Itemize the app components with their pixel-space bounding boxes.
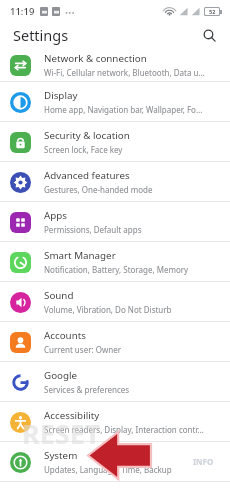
staticText: Network & connection	[44, 52, 147, 65]
staticText: System	[44, 449, 78, 462]
staticText: Gestures, One-handed mode	[44, 184, 153, 195]
staticText: Apps	[44, 209, 68, 222]
staticText: Wi-Fi, Cellular network, Bluetooth, Data…	[44, 67, 205, 78]
staticText: Google	[44, 369, 78, 382]
button[interactable]: System	[0, 442, 230, 482]
button[interactable]: Google	[0, 362, 230, 402]
button[interactable]: Accounts	[0, 322, 230, 362]
staticText: Accessibility	[44, 409, 100, 422]
staticText: Screen readers, Display, Interaction con…	[44, 424, 204, 435]
button[interactable]: Apps	[0, 202, 230, 242]
staticText: Screen lock, Face key	[44, 144, 123, 155]
staticText: 52	[209, 8, 216, 15]
button[interactable]: Security & location	[0, 122, 230, 162]
staticText: Security & location	[44, 129, 130, 142]
staticText: 11:19	[10, 5, 35, 18]
staticText: Home app, Navigation bar, Wallpaper, Fo…	[44, 104, 203, 115]
staticText: Current user: Owner	[44, 344, 121, 355]
staticText: Notification, Battery, Storage, Memory	[44, 264, 189, 275]
staticText: Updates, Language, Time, Backup	[44, 464, 172, 475]
staticText: Accounts	[44, 329, 86, 342]
staticText: Permissions, Default apps	[44, 224, 142, 235]
button[interactable]: Network & connection	[0, 48, 230, 82]
button[interactable]: Smart Manager	[0, 242, 230, 282]
staticText: INFO	[193, 456, 214, 467]
staticText: RESET	[22, 415, 101, 452]
button[interactable]: Display	[0, 82, 230, 122]
staticText: Services & preferences	[44, 384, 130, 395]
staticText: Sound	[44, 289, 74, 302]
staticText: Display	[44, 89, 78, 102]
button[interactable]: Advanced features	[0, 162, 230, 202]
button[interactable]: Sound	[0, 282, 230, 322]
staticText: Advanced features	[44, 169, 130, 182]
staticText: Volume, Vibration, Do Not Disturb	[44, 304, 172, 315]
staticText: Settings	[13, 25, 69, 45]
staticText: Smart Manager	[44, 249, 116, 262]
button[interactable]: Accessibility	[0, 402, 230, 442]
button[interactable]: Search	[196, 22, 222, 48]
